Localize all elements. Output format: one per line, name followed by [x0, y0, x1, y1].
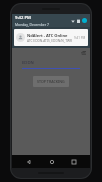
- button[interactable]: Recent apps: [67, 155, 80, 168]
- staticText: 9:41 PM: [74, 36, 86, 40]
- staticText: NdAlert - ATC Online: [27, 33, 68, 38]
- button[interactable]: Layers: [80, 50, 87, 57]
- button[interactable]: EDDN: [22, 60, 80, 69]
- staticText: Monday, December 7: [15, 22, 49, 27]
- button[interactable]: NdAlert - ATC Online: [14, 29, 88, 46]
- button[interactable]: Home: [45, 155, 58, 168]
- staticText: STOP TRACKING: [37, 79, 65, 84]
- button[interactable]: Back: [22, 155, 35, 168]
- button[interactable]: STOP TRACKING: [33, 76, 69, 87]
- staticText: EDDN: [22, 60, 34, 66]
- staticText: ATC EDDN-ATIS, EDDN/N_TWR: [27, 39, 72, 43]
- staticText: 9:42 PM: [15, 15, 31, 21]
